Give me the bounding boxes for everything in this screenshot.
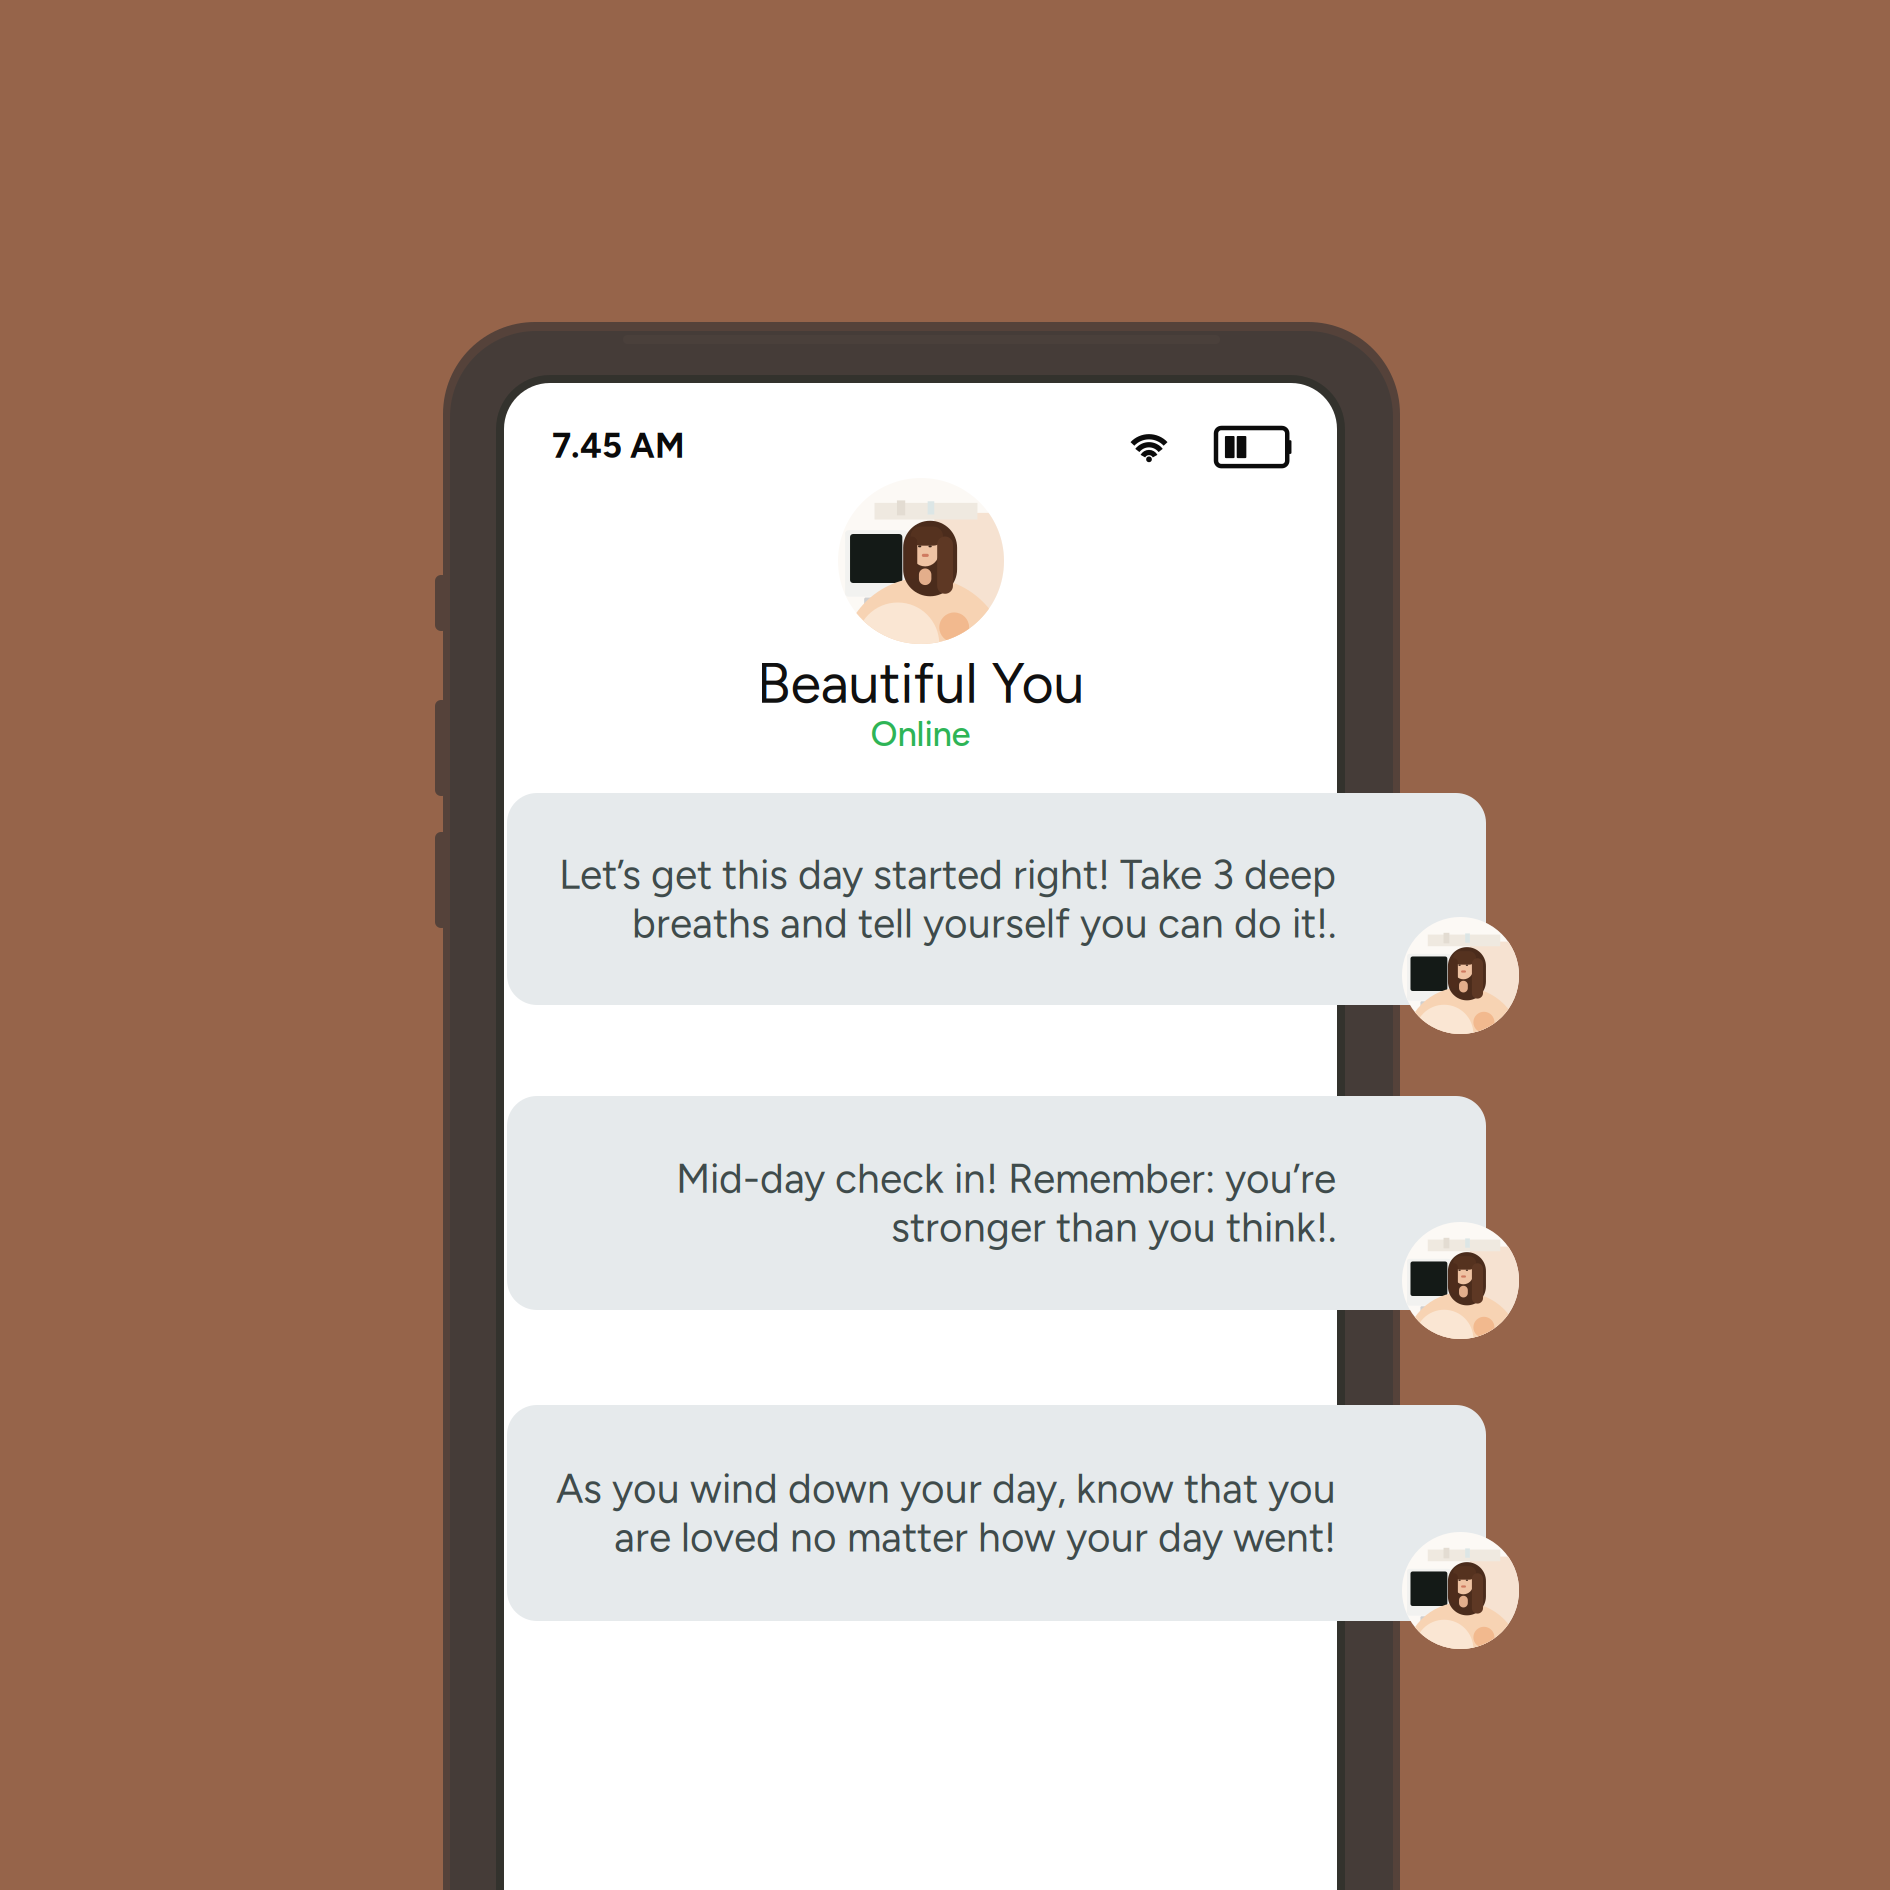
button[interactable]: Let’s get this day started right! Take 3…: [507, 793, 1486, 1005]
staticText: Let’s get this day started right! Take 3…: [559, 850, 1336, 899]
staticText: As you wind down your day, know that you: [556, 1464, 1336, 1513]
button[interactable]: Mid-day check in! Remember: you’re: [507, 1096, 1486, 1310]
button[interactable]: Online: [504, 713, 1337, 755]
staticText: 7.45 AM: [552, 425, 685, 466]
staticText: Beautiful You: [756, 650, 1084, 717]
staticText: are loved no matter how your day went!: [614, 1513, 1336, 1562]
staticText: Mid-day check in! Remember: you’re: [676, 1154, 1336, 1203]
staticText: stronger than you think!.: [891, 1203, 1336, 1252]
staticText: Online: [870, 713, 970, 755]
button[interactable]: Beautiful You profile photo: [838, 478, 1004, 644]
button[interactable]: As you wind down your day, know that you: [507, 1405, 1486, 1621]
staticText: breaths and tell yourself you can do it!…: [632, 899, 1336, 948]
